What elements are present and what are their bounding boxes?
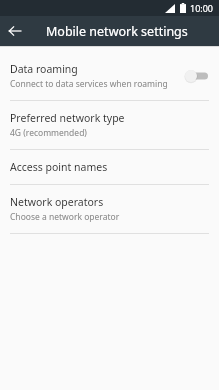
staticText: Data roaming [10,62,78,76]
button[interactable]: Data roaming toggle [185,68,209,84]
button[interactable]: Preferred network type [0,101,219,149]
staticText: 4G (recommended) [10,127,87,139]
button[interactable]: Data roaming [0,52,219,100]
staticText: Choose a network operator [10,211,120,223]
button[interactable]: Back [0,16,30,46]
staticText: Mobile network settings [46,23,188,40]
staticText: 10:00 [190,2,214,14]
staticText: Access point names [10,160,108,174]
staticText: Preferred network type [10,111,125,125]
button[interactable]: Access point names [0,150,219,184]
staticText: Connect to data services when roaming [10,78,168,90]
staticText: Network operators [10,195,104,209]
button[interactable]: Network operators [0,185,219,233]
